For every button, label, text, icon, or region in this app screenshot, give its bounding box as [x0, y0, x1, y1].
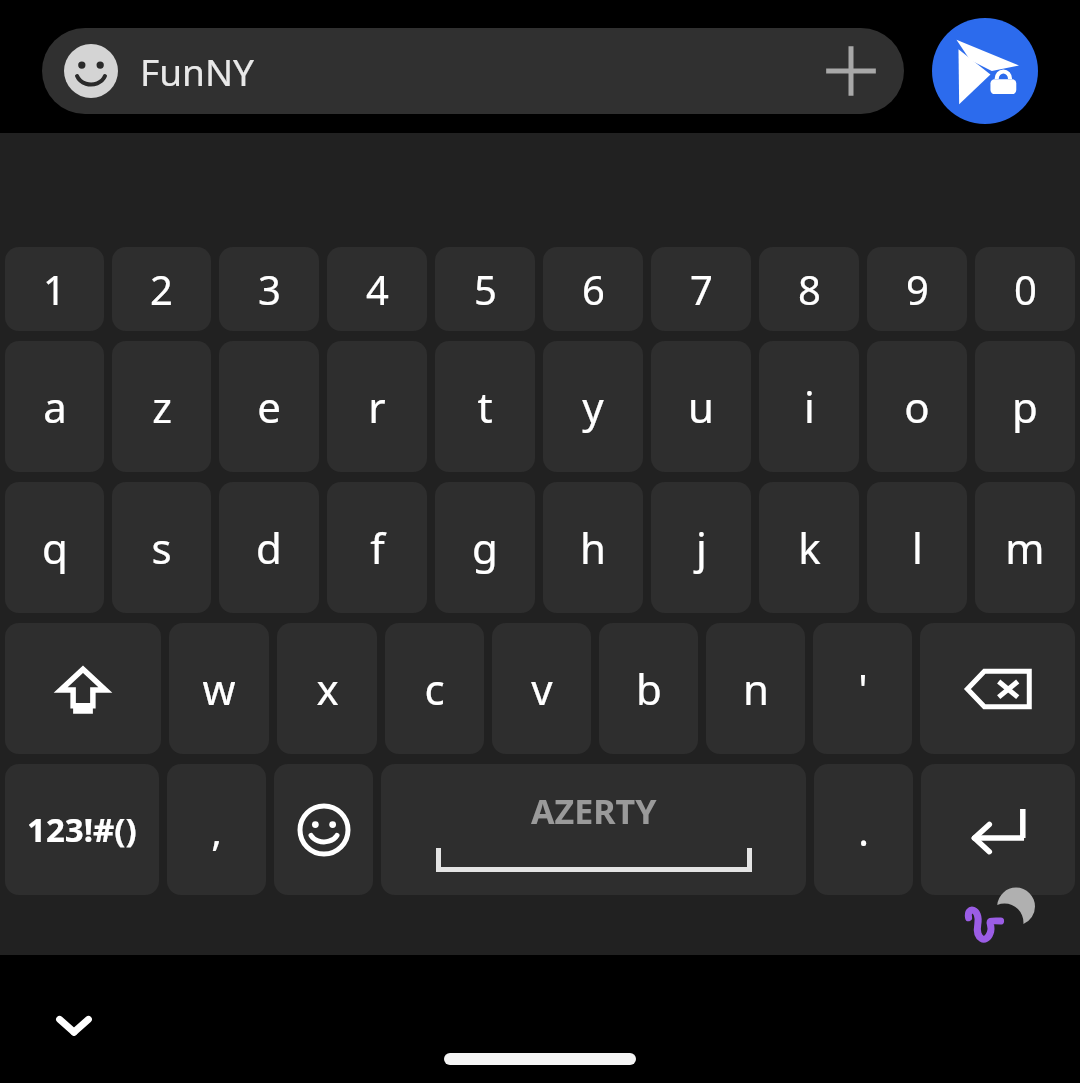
button[interactable]: u — [651, 341, 751, 472]
button[interactable]: p — [975, 341, 1075, 472]
staticText: a — [43, 378, 67, 435]
button[interactable]: 0 — [975, 247, 1075, 331]
staticText: AZERTY — [531, 788, 657, 834]
button[interactable]: k — [759, 482, 859, 613]
button[interactable]: e — [219, 341, 319, 472]
button[interactable]: s — [112, 482, 211, 613]
button[interactable]: q — [5, 482, 104, 613]
staticText: q — [42, 519, 68, 576]
button[interactable]: Hide keyboard — [42, 993, 106, 1057]
staticText: ' — [858, 660, 868, 717]
staticText: u — [688, 378, 714, 435]
staticText: x — [316, 660, 339, 717]
button[interactable]: l — [867, 482, 967, 613]
staticText: v — [531, 660, 553, 717]
button[interactable]: Space — [381, 764, 806, 895]
staticText: w — [202, 660, 236, 717]
staticText: e — [257, 378, 281, 435]
button[interactable]: ' — [813, 623, 912, 754]
button[interactable]: 1 — [5, 247, 104, 331]
staticText: 8 — [798, 262, 821, 316]
button[interactable]: x — [277, 623, 377, 754]
button[interactable]: 6 — [543, 247, 643, 331]
button[interactable]: Send securely — [932, 18, 1038, 124]
staticText: . — [858, 803, 869, 857]
staticText: y — [582, 378, 604, 435]
button[interactable]: m — [975, 482, 1075, 613]
staticText: 123!#() — [27, 807, 137, 852]
staticText: z — [152, 378, 172, 435]
button[interactable]: t — [435, 341, 535, 472]
staticText: 1 — [43, 262, 66, 316]
button[interactable]: . — [814, 764, 913, 895]
button[interactable]: i — [759, 341, 859, 472]
staticText: 6 — [582, 262, 605, 316]
staticText: s — [151, 519, 172, 576]
staticText: FunNY — [140, 46, 254, 96]
button[interactable]: v — [492, 623, 591, 754]
button[interactable]: j — [651, 482, 751, 613]
button[interactable]: y — [543, 341, 643, 472]
button[interactable]: 123!#() — [5, 764, 159, 895]
staticText: r — [368, 378, 386, 435]
staticText: g — [472, 519, 498, 576]
button[interactable]: h — [543, 482, 643, 613]
staticText: , — [211, 803, 222, 857]
staticText: p — [1012, 378, 1038, 435]
staticText: 4 — [366, 262, 389, 316]
staticText: t — [477, 378, 493, 435]
staticText: o — [904, 378, 930, 435]
button[interactable]: r — [327, 341, 427, 472]
button[interactable]: 7 — [651, 247, 751, 331]
button[interactable]: b — [599, 623, 698, 754]
button[interactable]: Backspace — [920, 623, 1075, 754]
staticText: i — [804, 378, 815, 435]
button[interactable]: Enter — [921, 764, 1075, 895]
button[interactable]: w — [169, 623, 269, 754]
button[interactable]: 9 — [867, 247, 967, 331]
staticText: m — [1005, 519, 1045, 576]
staticText: b — [636, 660, 662, 717]
button[interactable]: c — [385, 623, 484, 754]
button[interactable]: 2 — [112, 247, 211, 331]
staticText: 3 — [258, 262, 281, 316]
button[interactable]: 4 — [327, 247, 427, 331]
button[interactable]: 8 — [759, 247, 859, 331]
staticText: n — [743, 660, 769, 717]
button[interactable]: FunNY — [42, 28, 904, 114]
button[interactable]: , — [167, 764, 266, 895]
staticText: 5 — [474, 262, 497, 316]
button[interactable]: Add attachment — [820, 40, 882, 102]
button[interactable]: n — [706, 623, 805, 754]
button[interactable]: Emoji — [274, 764, 373, 895]
staticText: k — [798, 519, 821, 576]
staticText: 9 — [906, 262, 929, 316]
button[interactable]: f — [327, 482, 427, 613]
staticText: j — [696, 519, 707, 576]
button[interactable]: a — [5, 341, 104, 472]
button[interactable]: d — [219, 482, 319, 613]
staticText: h — [580, 519, 606, 576]
button[interactable]: 3 — [219, 247, 319, 331]
button[interactable]: o — [867, 341, 967, 472]
staticText: l — [912, 519, 923, 576]
staticText: d — [256, 519, 282, 576]
staticText: c — [424, 660, 445, 717]
staticText: f — [370, 519, 385, 576]
staticText: 0 — [1014, 262, 1037, 316]
button[interactable]: Night mode — [1012, 902, 1058, 948]
staticText: 7 — [690, 262, 713, 316]
button[interactable]: z — [112, 341, 211, 472]
staticText: 2 — [150, 262, 173, 316]
button[interactable]: 5 — [435, 247, 535, 331]
button[interactable]: Glide typing — [960, 902, 1006, 948]
button[interactable]: g — [435, 482, 535, 613]
button[interactable]: Shift — [5, 623, 161, 754]
